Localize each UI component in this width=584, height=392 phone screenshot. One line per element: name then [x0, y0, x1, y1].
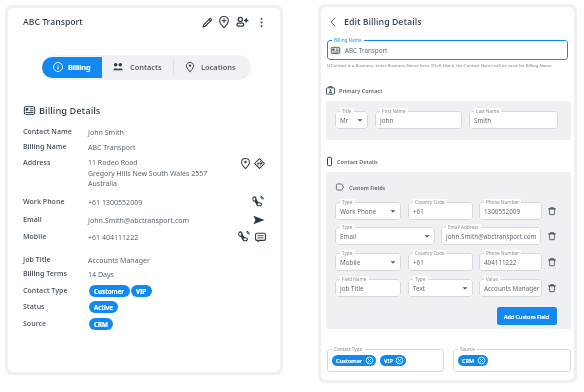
button[interactable]: CRM: [458, 355, 488, 366]
staticText: Type: [342, 250, 353, 256]
staticText: Locations: [201, 62, 236, 72]
staticText: Australia: [88, 179, 117, 189]
button[interactable]: Work Phone: [335, 202, 401, 220]
staticText: First Name: [382, 108, 406, 114]
button[interactable]: Job Title: [335, 279, 401, 297]
staticText: Billing: [68, 62, 91, 72]
staticText: Value: [486, 276, 498, 282]
staticText: Job Title: [340, 284, 364, 293]
button[interactable]: CRM: [453, 349, 571, 372]
staticText: Accounts Manager: [484, 284, 540, 293]
button[interactable]: Customer: [332, 355, 376, 366]
button[interactable]: Edit: [199, 14, 215, 30]
button[interactable]: Mobile: [335, 253, 401, 271]
staticText: John: [380, 116, 394, 125]
button[interactable]: Accounts Manager: [479, 279, 542, 297]
staticText: Country Code: [415, 250, 445, 256]
button[interactable]: Send email: [251, 212, 267, 228]
staticText: Add Custom Field: [504, 313, 550, 320]
button[interactable]: Directions: [251, 155, 267, 171]
button[interactable]: Send message: [252, 229, 268, 245]
staticText: Country Code: [415, 199, 445, 205]
staticText: 14 Days: [88, 269, 114, 279]
staticText: Primary Contact: [339, 87, 383, 94]
button[interactable]: +61: [408, 253, 473, 271]
staticText: Contact Name: [23, 127, 72, 137]
button[interactable]: [102, 55, 173, 80]
staticText: +61 1300552009: [88, 197, 143, 207]
staticText: Billing Name: [334, 37, 362, 43]
staticText: +61 404111222: [88, 232, 139, 242]
staticText: Email Address: [448, 224, 479, 230]
button[interactable]: Text: [408, 279, 473, 297]
button[interactable]: Show on map: [237, 155, 253, 171]
button[interactable]: Delete email field: [544, 228, 560, 244]
staticText: ABC Transport: [345, 46, 388, 55]
button[interactable]: John.Smith@abctransport.com: [441, 227, 541, 245]
button[interactable]: [42, 57, 102, 78]
button[interactable]: Customer: [89, 285, 130, 297]
staticText: Address: [23, 158, 51, 168]
button[interactable]: +61: [408, 202, 473, 220]
staticText: Active: [94, 303, 113, 312]
staticText: Custom Fields: [349, 184, 386, 191]
staticText: Type: [342, 199, 353, 205]
staticText: Billing Details: [39, 104, 101, 117]
staticText: Text: [413, 284, 426, 293]
staticText: Status: [23, 302, 45, 312]
staticText: Contact Type: [334, 346, 363, 352]
staticText: Type: [342, 224, 353, 230]
staticText: 1300552009: [484, 207, 521, 216]
staticText: Last Name: [476, 108, 499, 114]
staticText: Customer: [94, 287, 125, 296]
button[interactable]: VIP: [131, 285, 152, 297]
button[interactable]: Customer: [327, 349, 444, 372]
staticText: Phone Number: [486, 250, 519, 256]
button[interactable]: Delete work phone field: [544, 203, 560, 219]
staticText: Customer: [336, 357, 363, 365]
button[interactable]: John: [375, 111, 462, 129]
staticText: Title: [342, 108, 352, 114]
staticText: John.Smith@abctransport.com: [88, 215, 190, 225]
button[interactable]: CRM: [89, 318, 113, 330]
staticText: John Smith: [88, 127, 124, 137]
staticText: If Contact is a Business, enter Business…: [327, 62, 552, 68]
button[interactable]: Smith: [469, 111, 558, 129]
button[interactable]: 1300552009: [479, 202, 542, 220]
staticText: Accounts Manager: [88, 255, 150, 265]
staticText: Work Phone: [23, 197, 65, 207]
button[interactable]: VIP: [380, 355, 406, 366]
staticText: CRM: [462, 357, 475, 365]
button[interactable]: Delete job title field: [544, 280, 560, 296]
staticText: Mobile: [340, 258, 361, 267]
button[interactable]: Call mobile: [235, 228, 251, 244]
button[interactable]: 404111222: [479, 253, 542, 271]
staticText: Phone Number: [486, 199, 519, 205]
button[interactable]: Add location: [216, 14, 232, 30]
staticText: 11 Rodeo Road: [88, 158, 138, 168]
staticText: Field Name: [342, 276, 367, 282]
staticText: Type: [415, 276, 426, 282]
staticText: Gregory Hills New South Wales 2557: [88, 169, 208, 179]
staticText: Smith: [474, 116, 492, 125]
staticText: Source: [23, 319, 47, 329]
button[interactable]: Email: [335, 227, 435, 245]
button[interactable]: Back: [325, 14, 341, 30]
staticText: Source: [460, 346, 475, 352]
button[interactable]: Call work phone: [249, 193, 265, 209]
button[interactable]: [174, 55, 250, 80]
button[interactable]: Mr: [335, 111, 368, 129]
button[interactable]: Add contact: [234, 14, 250, 30]
staticText: +61: [413, 207, 424, 216]
staticText: Email: [23, 215, 42, 225]
staticText: John.Smith@abctransport.com: [446, 232, 537, 241]
staticText: Job Title: [23, 255, 51, 265]
staticText: Mobile: [23, 232, 47, 242]
button[interactable]: Active: [89, 301, 118, 313]
button[interactable]: Delete mobile field: [544, 254, 560, 270]
button[interactable]: ABC Transport: [327, 40, 568, 60]
button[interactable]: More options: [253, 14, 269, 30]
staticText: Contacts: [130, 62, 162, 72]
staticText: CRM: [94, 320, 108, 329]
button[interactable]: Add Custom Field: [497, 307, 557, 325]
